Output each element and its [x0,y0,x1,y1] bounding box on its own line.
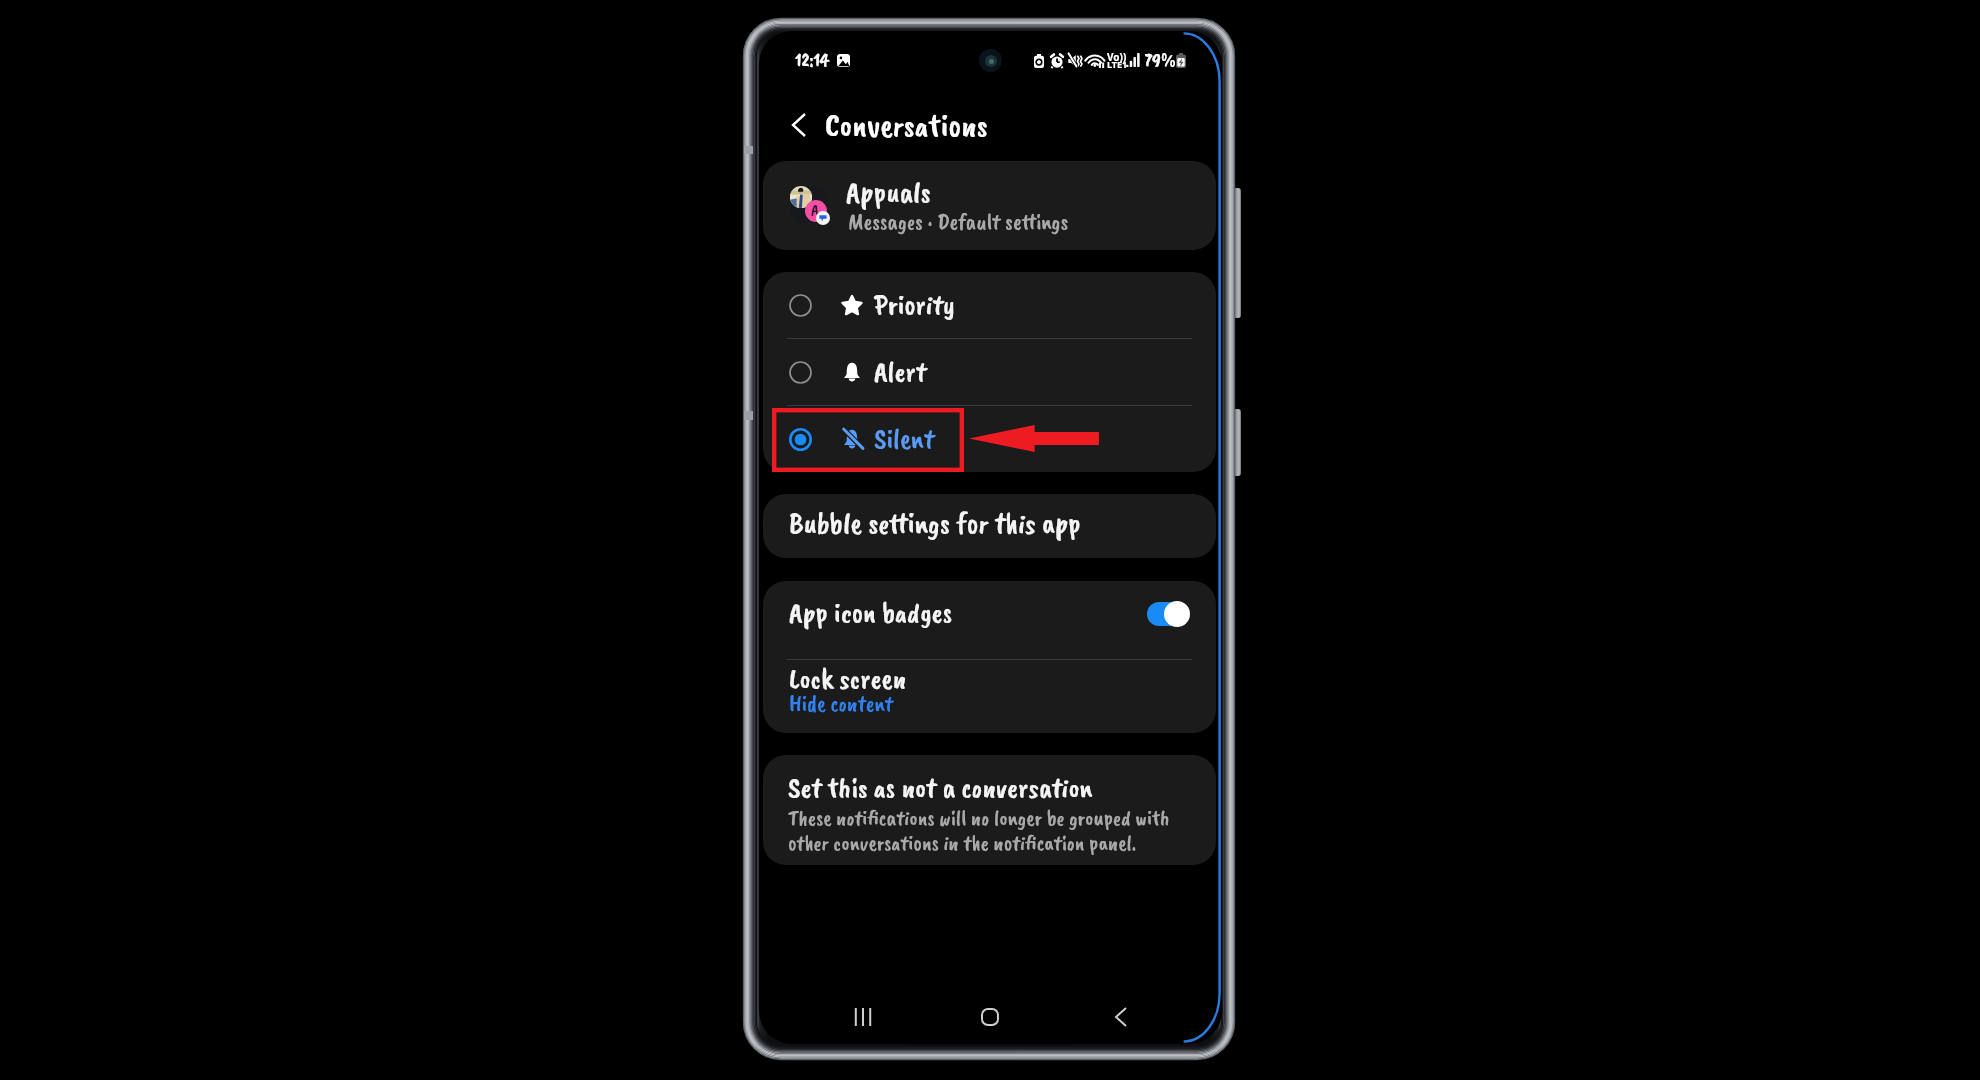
button[interactable]: Back [1101,997,1141,1037]
staticText: Messages · Default settings [848,207,1069,236]
button[interactable]: Priority [763,272,1216,339]
button[interactable]: Lock screen [763,660,1216,733]
button[interactable]: Recent apps [843,997,883,1037]
staticText: Bubble settings for this app [789,504,1081,542]
staticText: Conversations [825,104,988,146]
button[interactable]: Alert [763,339,1216,406]
staticText: App icon badges [789,594,953,631]
button[interactable]: Navigate up [779,105,819,145]
staticText: Vo)) [1107,50,1127,64]
staticText: Set this as not a conversation [788,769,1093,806]
staticText: Lock screen [789,660,907,697]
staticText: Priority [874,286,955,323]
button[interactable]: A [763,161,1216,250]
button[interactable]: Bubble settings for this app [763,494,1216,558]
button[interactable]: App icon badges [763,581,1216,659]
staticText: Appuals [846,173,931,211]
staticText: 79% [1145,48,1176,72]
staticText: LTE1 [1107,58,1128,70]
button[interactable]: Silent [763,406,1216,472]
staticText: A [811,200,819,221]
staticText: Hide content [789,689,893,718]
staticText: 12:14 [795,48,829,72]
staticText: These notifications will no longer be gr… [788,804,1190,857]
staticText: Silent [874,420,935,457]
button[interactable]: Home [970,997,1010,1037]
button[interactable]: Set this as not a conversation [763,755,1216,865]
staticText: Alert [874,353,927,390]
